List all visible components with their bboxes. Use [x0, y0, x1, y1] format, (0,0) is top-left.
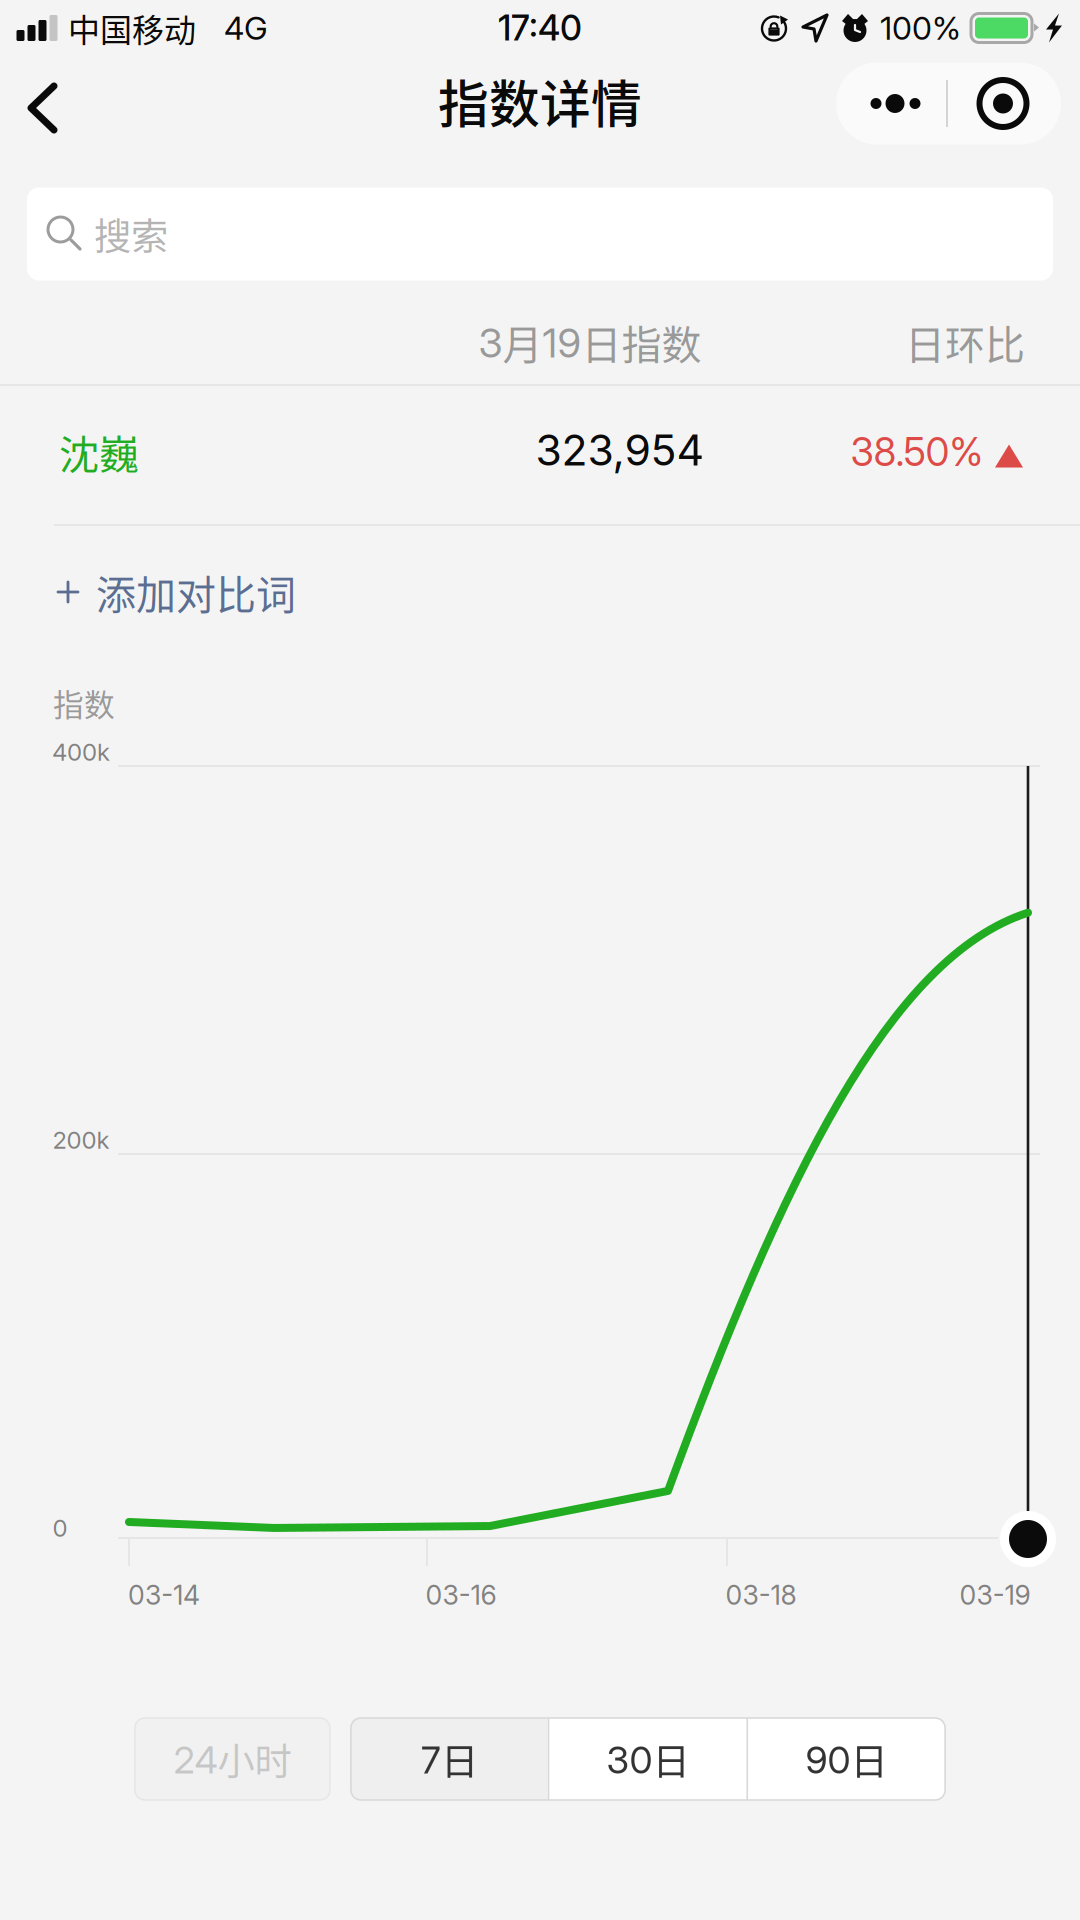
staticText: 添加对比词: [96, 563, 296, 621]
staticText: 0: [52, 1513, 67, 1542]
staticText: 4G: [224, 9, 268, 47]
button[interactable]: 返回: [0, 56, 80, 160]
staticText: 03-14: [128, 1579, 200, 1611]
staticText: 24小时: [173, 1732, 291, 1786]
staticText: 7日: [421, 1732, 478, 1786]
staticText: 200k: [52, 1125, 109, 1154]
staticText: 90日: [806, 1732, 888, 1786]
button[interactable]: 24小时: [135, 1718, 330, 1800]
staticText: 100%: [880, 9, 961, 47]
button[interactable]: 添加对比词: [0, 537, 1080, 647]
staticText: 400k: [52, 737, 110, 766]
button[interactable]: 搜索: [27, 187, 1053, 280]
button[interactable]: 30日: [549, 1718, 746, 1800]
staticText: 3月19日指数: [478, 313, 701, 371]
staticText: 17:40: [498, 7, 582, 49]
staticText: 指数详情: [438, 64, 642, 138]
staticText: 指数: [53, 681, 115, 725]
staticText: 38.50%: [850, 429, 983, 475]
button[interactable]: 90日: [748, 1718, 945, 1800]
staticText: 323,954: [535, 424, 704, 476]
staticText: 03-18: [725, 1579, 796, 1611]
staticText: 沈巍: [59, 423, 139, 481]
staticText: 搜索: [94, 207, 168, 261]
staticText: 03-19: [959, 1579, 1030, 1611]
button[interactable]: 更多: [836, 62, 1061, 144]
staticText: 中国移动: [68, 5, 196, 51]
staticText: 日环比: [905, 313, 1025, 371]
staticText: 03-16: [425, 1579, 496, 1611]
button[interactable]: 7日: [351, 1718, 548, 1800]
staticText: 30日: [606, 1732, 689, 1786]
